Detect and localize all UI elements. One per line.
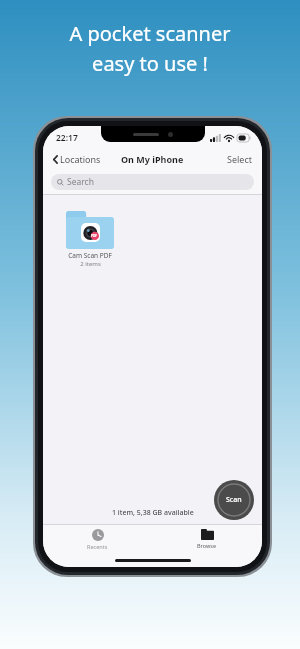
- staticText: PDF: [91, 234, 98, 238]
- button[interactable]: Locations: [51, 151, 103, 167]
- staticText: Select: [227, 153, 252, 165]
- staticText: On My iPhone: [121, 153, 184, 165]
- button[interactable]: Recents: [43, 525, 152, 555]
- button[interactable]: Search: [51, 174, 254, 190]
- staticText: Search: [67, 176, 94, 188]
- button[interactable]: Scan: [214, 480, 254, 520]
- staticText: easy to use !: [92, 50, 208, 77]
- button[interactable]: PDF: [61, 211, 119, 268]
- staticText: Cam Scan PDF: [68, 251, 112, 260]
- button[interactable]: Browse: [152, 525, 262, 555]
- staticText: Locations: [60, 153, 101, 165]
- staticText: Scan: [226, 495, 242, 505]
- staticText: 2 items: [80, 260, 101, 268]
- staticText: Recents: [87, 543, 108, 550]
- staticText: Browse: [197, 542, 217, 549]
- button[interactable]: Select: [225, 151, 254, 167]
- staticText: 22:17: [56, 132, 78, 144]
- staticText: A pocket scanner: [69, 20, 231, 47]
- staticText: 1 item, 5,38 GB available: [112, 508, 194, 518]
